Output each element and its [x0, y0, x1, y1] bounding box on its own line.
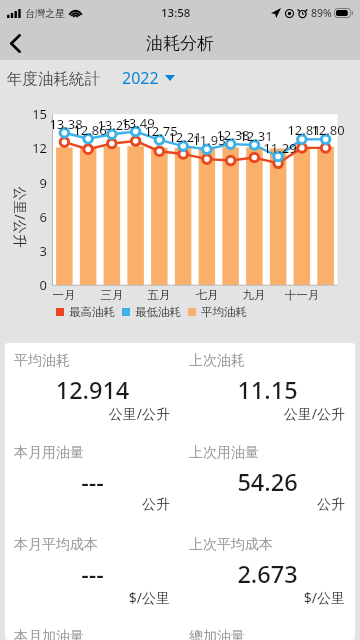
- staticText: 年度油耗統計: [7, 69, 100, 89]
- button[interactable]: 2022: [122, 63, 175, 93]
- staticText: ---: [5, 558, 180, 590]
- staticText: $/公里: [5, 588, 170, 607]
- staticText: 本月加油量: [14, 628, 84, 640]
- staticText: 七月: [182, 288, 232, 302]
- staticText: 3: [25, 242, 47, 260]
- staticText: 本月平均成本: [14, 536, 98, 554]
- staticText: ---: [5, 466, 180, 498]
- staticText: 公里/公升: [10, 186, 29, 248]
- staticText: 54.26: [180, 466, 355, 498]
- staticText: 15: [25, 105, 47, 123]
- staticText: 2022: [122, 67, 159, 89]
- staticText: 12.31: [236, 127, 276, 145]
- staticText: 12.914: [5, 374, 180, 406]
- staticText: 12: [25, 139, 47, 157]
- staticText: 13.38: [46, 115, 86, 133]
- staticText: 平均油耗: [201, 305, 247, 319]
- staticText: 0: [25, 276, 47, 294]
- staticText: 11.15: [180, 374, 355, 406]
- staticText: 11.29: [260, 139, 300, 157]
- staticText: 12.21: [165, 128, 205, 146]
- staticText: 89%: [311, 6, 332, 20]
- staticText: 一月: [39, 288, 89, 302]
- staticText: 12.80: [308, 121, 348, 139]
- staticText: 油耗分析: [146, 33, 214, 54]
- staticText: 本月用油量: [14, 444, 84, 462]
- staticText: 總加油量: [189, 628, 245, 640]
- staticText: 公里/公升: [5, 404, 170, 423]
- staticText: 九月: [229, 288, 279, 302]
- staticText: 9: [25, 174, 47, 192]
- staticText: 五月: [134, 288, 184, 302]
- button[interactable]: 上次用油量: [180, 435, 355, 527]
- staticText: 台灣之星: [25, 7, 65, 20]
- staticText: 6: [25, 208, 47, 226]
- staticText: 最高油耗: [69, 305, 115, 319]
- button[interactable]: 總加油量: [180, 619, 355, 640]
- staticText: 平均油耗: [14, 352, 70, 370]
- staticText: 12.81: [284, 121, 324, 139]
- staticText: 12.75: [141, 122, 181, 140]
- staticText: 12.86: [70, 121, 110, 139]
- staticText: 13.25: [94, 116, 134, 134]
- staticText: 十一月: [277, 288, 327, 302]
- button[interactable]: 本月平均成本: [5, 527, 180, 619]
- staticText: 12.38: [213, 126, 253, 144]
- button[interactable]: Back: [1, 26, 29, 60]
- staticText: 公里/公升: [180, 404, 345, 423]
- staticText: 13:58: [161, 5, 191, 21]
- staticText: 上次用油量: [189, 444, 259, 462]
- button[interactable]: 平均油耗: [5, 343, 180, 435]
- staticText: 最低油耗: [135, 305, 181, 319]
- staticText: 三月: [87, 288, 137, 302]
- button[interactable]: 本月加油量: [5, 619, 180, 640]
- staticText: 公升: [180, 496, 345, 514]
- staticText: 公升: [5, 496, 170, 514]
- staticText: 上次油耗: [189, 352, 245, 370]
- staticText: 2.673: [180, 558, 355, 590]
- button[interactable]: 上次平均成本: [180, 527, 355, 619]
- staticText: 11.93: [189, 131, 229, 149]
- button[interactable]: 本月用油量: [5, 435, 180, 527]
- button[interactable]: 上次油耗: [180, 343, 355, 435]
- staticText: 13.49: [118, 114, 158, 132]
- staticText: 上次平均成本: [189, 536, 273, 554]
- staticText: $/公里: [180, 588, 345, 607]
